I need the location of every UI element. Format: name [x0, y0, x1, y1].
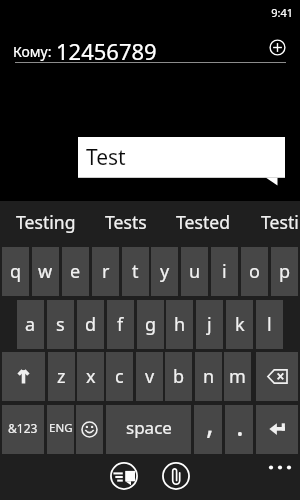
staticText: ENG: [49, 420, 73, 436]
button[interactable]: e: [62, 247, 89, 296]
button[interactable]: n: [195, 352, 222, 401]
staticText: r: [102, 259, 110, 284]
button[interactable]: h: [166, 300, 193, 349]
button[interactable]: Testing: [261, 201, 300, 247]
staticText: w: [38, 259, 53, 284]
staticText: d: [85, 312, 97, 337]
button[interactable]: g: [137, 300, 164, 349]
staticText: l: [267, 312, 272, 337]
button[interactable]: c: [106, 352, 133, 401]
button[interactable]: Tested: [176, 201, 230, 247]
button[interactable]: t: [122, 247, 149, 296]
staticText: Testing: [261, 210, 300, 234]
button[interactable]: i: [211, 247, 238, 296]
button[interactable]: d: [77, 300, 104, 349]
staticText: q: [10, 259, 22, 284]
staticText: f: [117, 312, 124, 337]
staticText: p: [279, 259, 291, 284]
staticText: c: [115, 364, 124, 389]
staticText: y: [160, 259, 170, 284]
button[interactable]: Tests: [105, 201, 147, 247]
button[interactable]: ,: [194, 405, 222, 454]
staticText: x: [86, 364, 96, 389]
staticText: t: [132, 259, 139, 284]
button[interactable]: s: [47, 300, 74, 349]
button[interactable]: Emoji: [76, 405, 103, 454]
button[interactable]: q: [2, 247, 29, 296]
staticText: m: [229, 364, 246, 389]
staticText: 9:41: [0, 5, 293, 20]
button[interactable]: r: [92, 247, 119, 296]
button[interactable]: l: [256, 300, 283, 349]
button[interactable]: u: [181, 247, 208, 296]
staticText: i: [222, 259, 227, 284]
button[interactable]: &123: [2, 405, 44, 454]
staticText: s: [56, 312, 65, 337]
button[interactable]: z: [48, 352, 75, 401]
button[interactable]: k: [226, 300, 253, 349]
button[interactable]: m: [224, 352, 251, 401]
staticText: n: [203, 364, 215, 389]
staticText: j: [207, 312, 212, 337]
staticText: v: [145, 364, 155, 389]
staticText: 12456789: [56, 36, 157, 66]
button[interactable]: .: [225, 405, 253, 454]
button[interactable]: p: [271, 247, 298, 296]
staticText: &123: [8, 420, 38, 436]
button[interactable]: Enter: [256, 405, 298, 454]
button[interactable]: New message: [110, 462, 138, 490]
staticText: Tested: [176, 210, 230, 234]
staticText: .: [236, 405, 244, 444]
staticText: k: [235, 312, 245, 337]
button[interactable]: Shift: [2, 352, 45, 401]
button[interactable]: w: [32, 247, 59, 296]
staticText: z: [57, 364, 66, 389]
button[interactable]: More options: [264, 459, 296, 476]
button[interactable]: Attach: [162, 462, 190, 490]
staticText: u: [189, 259, 201, 284]
staticText: b: [173, 364, 185, 389]
button[interactable]: a: [17, 300, 44, 349]
button[interactable]: o: [241, 247, 268, 296]
staticText: e: [70, 259, 81, 284]
staticText: space: [126, 416, 172, 439]
button[interactable]: Backspace: [256, 352, 298, 401]
button[interactable]: Testing: [16, 201, 76, 247]
staticText: g: [145, 312, 157, 337]
button[interactable]: y: [151, 247, 178, 296]
staticText: ,: [206, 403, 214, 442]
staticText: Кому:: [13, 42, 52, 61]
staticText: Testing: [16, 210, 76, 234]
button[interactable]: space: [106, 405, 191, 454]
staticText: o: [249, 259, 260, 284]
button[interactable]: j: [196, 300, 223, 349]
staticText: Test: [86, 143, 126, 172]
button[interactable]: Add recipient: [268, 38, 287, 57]
button[interactable]: x: [77, 352, 104, 401]
button[interactable]: b: [165, 352, 192, 401]
button[interactable]: ENG: [47, 405, 74, 454]
staticText: h: [174, 312, 186, 337]
button[interactable]: v: [136, 352, 163, 401]
staticText: Tests: [105, 210, 147, 234]
staticText: a: [25, 312, 36, 337]
button[interactable]: f: [107, 300, 134, 349]
